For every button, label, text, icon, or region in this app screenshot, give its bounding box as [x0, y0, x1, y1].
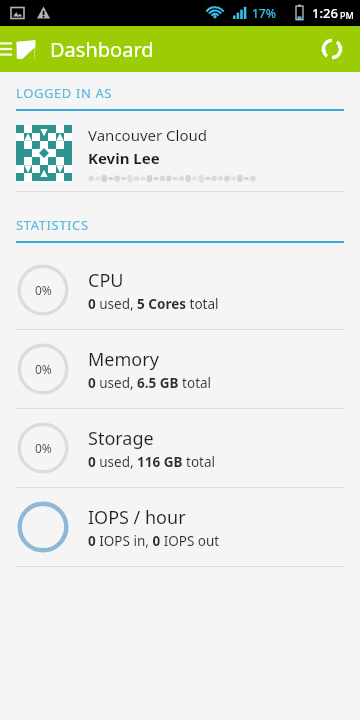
staticText: PM — [340, 9, 354, 21]
button[interactable]: Open navigation menu — [0, 26, 16, 72]
staticText: STATISTICS — [16, 216, 89, 234]
staticText: LOGGED IN AS — [16, 84, 113, 102]
staticText: IOPS / hour — [88, 505, 186, 530]
staticText: 0 used, 5 Cores total — [88, 295, 219, 313]
staticText: 0 used, 6.5 GB total — [88, 374, 212, 392]
staticText: 0 IOPS in, 0 IOPS out — [88, 532, 220, 550]
staticText: 0 used, 116 GB total — [88, 453, 215, 471]
staticText: 0% — [35, 282, 52, 298]
staticText: 1:26 — [312, 4, 338, 22]
button[interactable]: 0% — [0, 330, 360, 408]
button[interactable]: 0% — [0, 409, 360, 487]
staticText: Memory — [88, 347, 159, 372]
staticText: Storage — [88, 426, 154, 451]
button[interactable]: Vancouver Cloud — [0, 111, 360, 185]
staticText: CPU — [88, 268, 124, 293]
button[interactable]: 0% — [0, 251, 360, 329]
staticText: Vancouver Cloud — [88, 125, 208, 145]
staticText: 0% — [35, 361, 52, 377]
staticText: 17% — [252, 5, 276, 21]
button[interactable]: Refresh — [312, 29, 352, 69]
staticText: Dashboard — [50, 36, 154, 63]
staticText: Kevin Lee — [88, 148, 160, 168]
button[interactable]: IOPS / hour — [0, 488, 360, 566]
staticText: 0% — [35, 440, 52, 456]
